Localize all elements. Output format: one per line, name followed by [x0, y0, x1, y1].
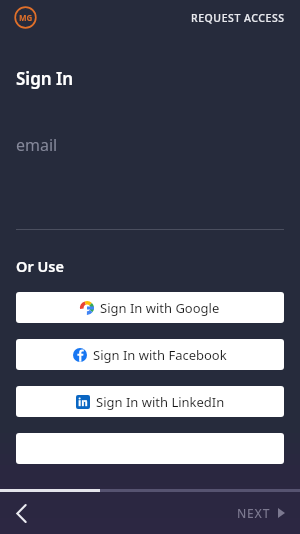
- button[interactable]: Sign In with Facebook: [16, 339, 284, 370]
- staticText: Sign In with LinkedIn: [96, 393, 225, 411]
- button[interactable]: Back: [0, 495, 43, 532]
- staticText: Sign In with Google: [100, 299, 220, 317]
- button[interactable]: MG home: [14, 6, 37, 29]
- staticText: MG: [19, 12, 33, 23]
- button[interactable]: email: [0, 121, 300, 169]
- staticText: REQUEST ACCESS: [191, 11, 285, 25]
- staticText: email: [16, 134, 58, 156]
- button[interactable]: Sign In with Google: [16, 292, 284, 323]
- button[interactable]: Sign In with LinkedIn: [16, 386, 284, 417]
- button[interactable]: Sign in with another account: [16, 433, 284, 464]
- button[interactable]: REQUEST ACCESS: [176, 4, 300, 32]
- button[interactable]: NEXT: [222, 497, 300, 529]
- staticText: Sign In: [16, 67, 74, 90]
- staticText: Or Use: [16, 256, 64, 276]
- staticText: NEXT: [237, 505, 271, 521]
- staticText: Sign In with Facebook: [93, 346, 227, 364]
